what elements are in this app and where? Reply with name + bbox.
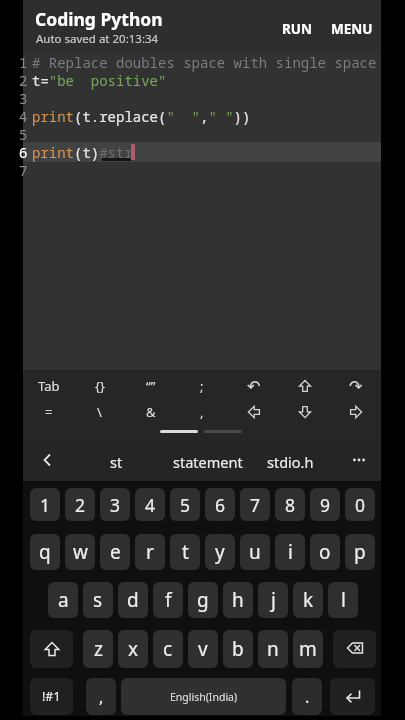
button[interactable]: 1 <box>30 488 60 521</box>
button[interactable] <box>343 444 375 476</box>
staticText: Tab <box>38 377 60 395</box>
button[interactable]: \ <box>74 401 125 423</box>
button[interactable]: t <box>170 534 200 570</box>
button[interactable] <box>31 444 63 476</box>
staticText: ↶ <box>247 377 261 396</box>
button[interactable]: ; <box>176 375 227 397</box>
staticText: MENU <box>331 20 373 38</box>
button[interactable]: k <box>293 582 323 618</box>
button[interactable]: s <box>83 582 113 618</box>
button[interactable]: n <box>258 630 288 668</box>
button[interactable] <box>279 401 330 423</box>
button[interactable]: English(India) <box>121 678 286 715</box>
button[interactable]: p <box>345 534 375 570</box>
button[interactable]: , <box>86 678 116 715</box>
button[interactable]: MENU <box>326 18 378 40</box>
button[interactable]: q <box>30 534 60 570</box>
staticText: ; <box>200 377 204 395</box>
staticText: print(t)#str <box>32 143 133 162</box>
staticText: \ <box>97 403 102 421</box>
staticText: statement <box>173 452 243 472</box>
button[interactable]: y <box>205 534 235 570</box>
button[interactable] <box>279 375 330 397</box>
button[interactable]: Tab <box>23 375 74 397</box>
staticText: print(t.replace(" "," ")) <box>32 107 251 126</box>
button[interactable]: 2 <box>65 488 95 521</box>
button[interactable]: RUN <box>276 18 318 40</box>
button[interactable]: l <box>328 582 358 618</box>
staticText: 4 <box>19 107 28 126</box>
staticText: 2 <box>75 493 86 517</box>
button[interactable]: {} <box>74 375 125 397</box>
button[interactable] <box>330 401 381 423</box>
button[interactable]: 6 <box>205 488 235 521</box>
staticText: f <box>165 587 172 613</box>
button[interactable] <box>333 630 376 668</box>
button[interactable]: r <box>135 534 165 570</box>
button[interactable]: z <box>83 630 113 668</box>
button[interactable]: = <box>23 401 74 423</box>
staticText: h <box>232 587 244 613</box>
staticText: 2 <box>19 71 28 90</box>
staticText: st <box>110 452 123 472</box>
button[interactable]: c <box>153 630 183 668</box>
button[interactable]: 4 <box>135 488 165 521</box>
button[interactable]: j <box>258 582 288 618</box>
button[interactable]: v <box>188 630 218 668</box>
staticText: 5 <box>180 493 191 517</box>
button[interactable]: b <box>223 630 253 668</box>
button[interactable]: statement <box>173 451 243 473</box>
staticText: p <box>354 539 366 565</box>
button[interactable]: 5 <box>170 488 200 521</box>
button[interactable]: o <box>310 534 340 570</box>
button[interactable]: “” <box>125 375 176 397</box>
button[interactable] <box>30 630 73 668</box>
button[interactable]: 0 <box>345 488 375 521</box>
staticText: i <box>288 539 293 565</box>
staticText: e <box>110 539 121 565</box>
button[interactable]: u <box>240 534 270 570</box>
staticText: & <box>146 403 156 421</box>
button[interactable]: 9 <box>310 488 340 521</box>
button[interactable]: 7 <box>240 488 270 521</box>
button[interactable]: f <box>153 582 183 618</box>
button[interactable]: a <box>48 582 78 618</box>
staticText: s <box>93 587 103 613</box>
button[interactable]: , <box>176 401 227 423</box>
button[interactable]: e <box>100 534 130 570</box>
button[interactable]: h <box>223 582 253 618</box>
button[interactable]: g <box>188 582 218 618</box>
button[interactable]: i <box>275 534 305 570</box>
button[interactable]: w <box>65 534 95 570</box>
button[interactable]: & <box>125 401 176 423</box>
staticText: z <box>94 636 103 662</box>
button[interactable] <box>330 678 375 715</box>
staticText: # Replace doubles space with single spac… <box>32 53 377 72</box>
button[interactable]: ↷ <box>330 375 381 397</box>
staticText: g <box>197 587 209 613</box>
button[interactable]: d <box>118 582 148 618</box>
button[interactable]: 8 <box>275 488 305 521</box>
staticText: 1 <box>40 493 51 517</box>
staticText: m <box>299 636 317 662</box>
button[interactable]: !#1 <box>30 678 73 715</box>
button[interactable]: x <box>118 630 148 668</box>
button[interactable] <box>228 401 279 423</box>
button[interactable]: m <box>293 630 323 668</box>
staticText: a <box>58 587 69 613</box>
button[interactable]: . <box>292 678 322 715</box>
staticText: 8 <box>285 493 296 517</box>
staticText: r <box>146 539 154 565</box>
button[interactable]: stdio.h <box>260 451 320 473</box>
staticText: v <box>198 636 208 662</box>
button[interactable]: 3 <box>100 488 130 521</box>
staticText: 7 <box>19 161 28 180</box>
staticText: !#1 <box>42 688 61 705</box>
staticText: stdio.h <box>267 452 314 472</box>
staticText: 3 <box>19 89 28 108</box>
staticText: = <box>45 403 53 421</box>
staticText: o <box>319 539 331 565</box>
button[interactable]: st <box>101 451 131 473</box>
button[interactable]: ↶ <box>228 375 279 397</box>
staticText: 3 <box>110 493 121 517</box>
